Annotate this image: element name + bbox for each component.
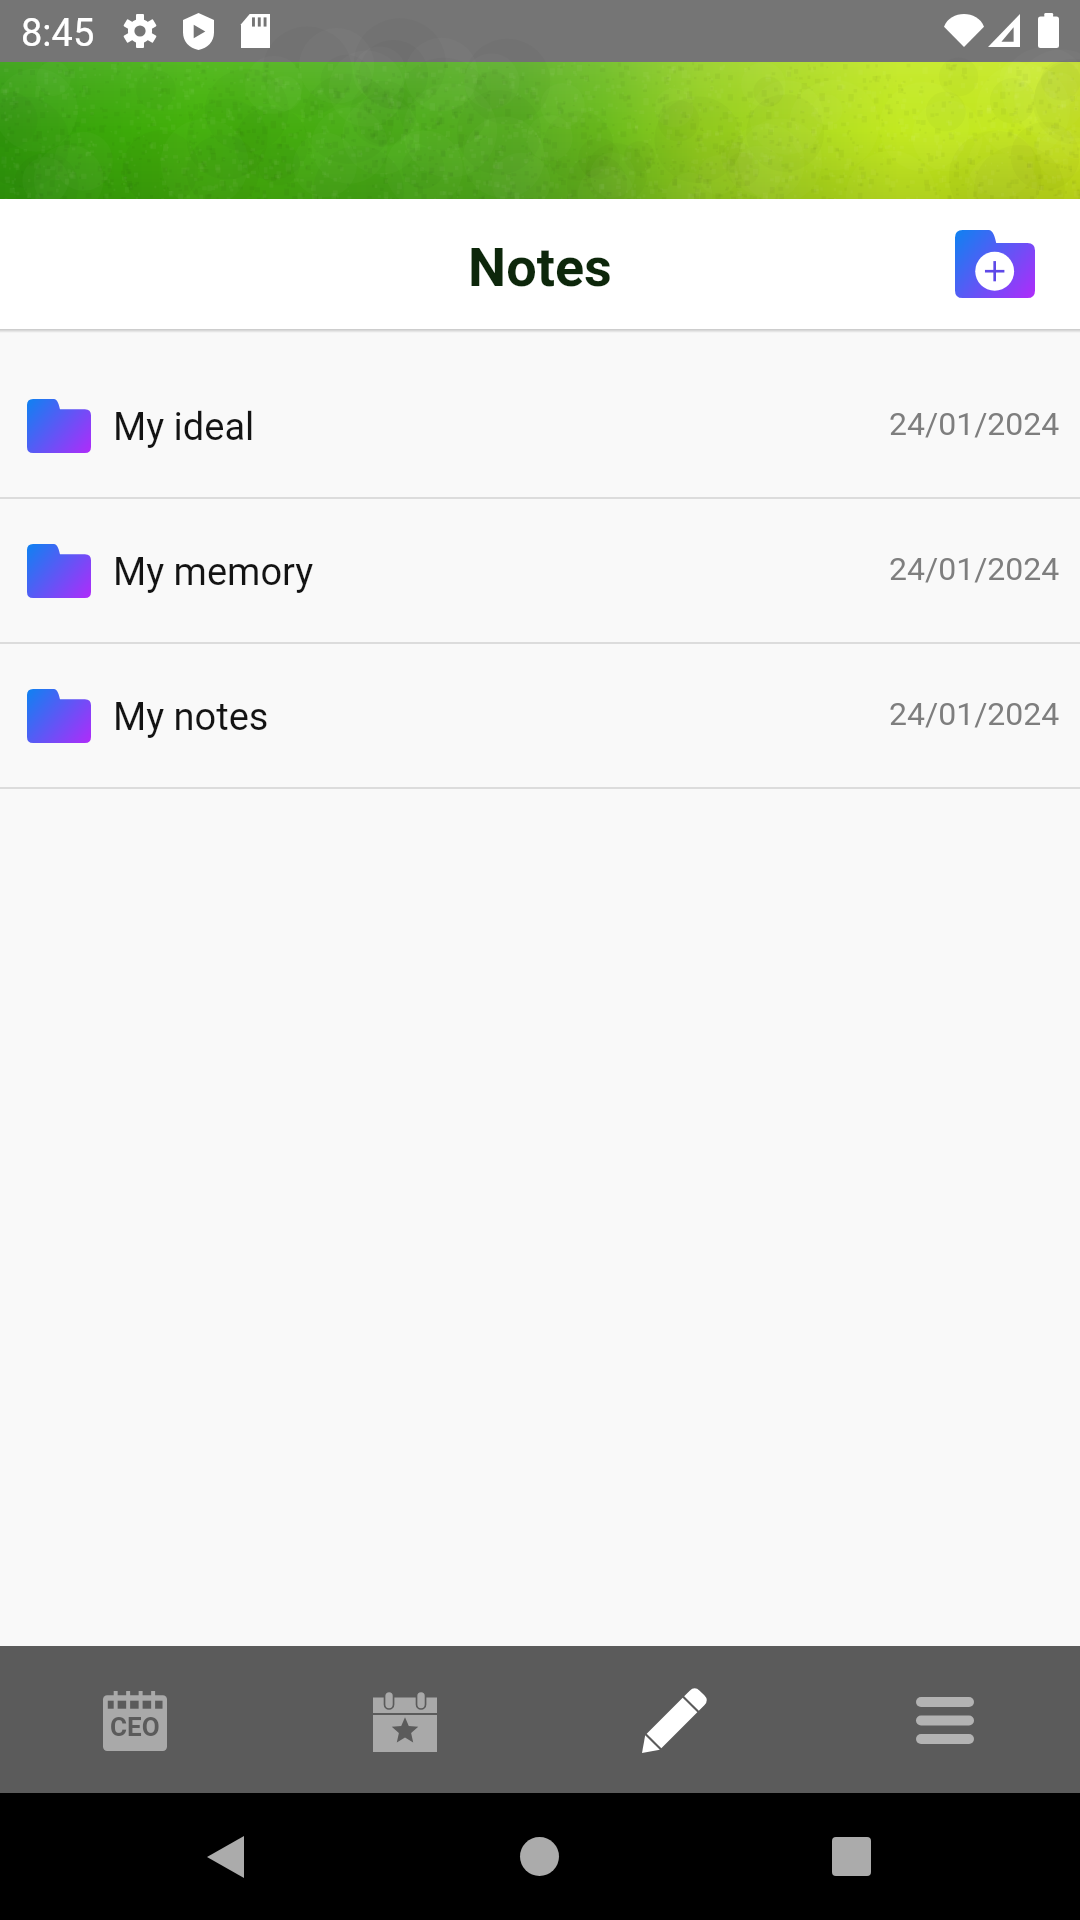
button[interactable]: My notes: [0, 644, 1080, 787]
staticText: My notes: [113, 695, 269, 740]
staticText: My memory: [113, 550, 314, 595]
button[interactable]: Edit note: [608, 1646, 1080, 1793]
staticText: Notes: [468, 236, 612, 299]
button[interactable]: Favorites: [341, 1646, 1080, 1793]
button[interactable]: Create folder: [945, 218, 1045, 310]
button[interactable]: Notepad: [71, 1646, 1080, 1793]
button[interactable]: Home: [460, 1793, 620, 1920]
staticText: My ideal: [113, 405, 255, 450]
staticText: 8:45: [21, 11, 95, 56]
staticText: 24/01/2024: [889, 550, 1060, 588]
button[interactable]: My ideal: [0, 354, 1080, 497]
button[interactable]: My memory: [0, 499, 1080, 642]
staticText: CEO: [110, 1712, 160, 1742]
button[interactable]: Back: [145, 1793, 305, 1920]
staticText: 24/01/2024: [889, 695, 1060, 733]
button[interactable]: Menu: [881, 1646, 1080, 1793]
staticText: 24/01/2024: [889, 405, 1060, 443]
button[interactable]: Recent apps: [771, 1793, 931, 1920]
